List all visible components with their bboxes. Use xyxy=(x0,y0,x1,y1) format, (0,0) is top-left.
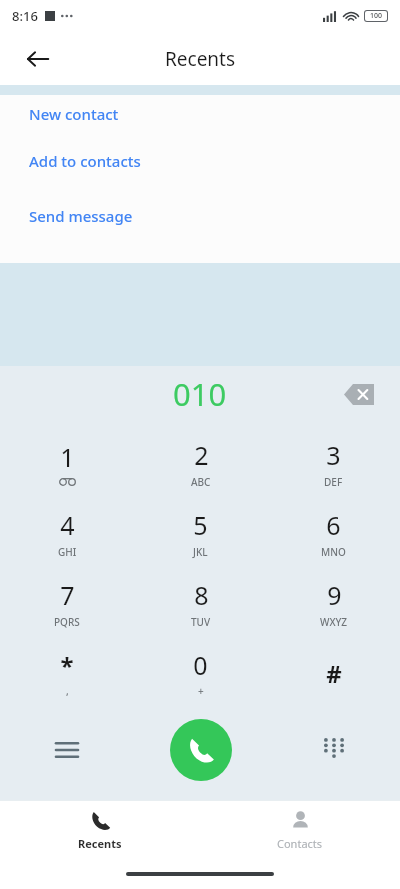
button[interactable]: 8 xyxy=(134,568,267,638)
staticText: Recents xyxy=(165,46,236,72)
staticText: 1 xyxy=(60,440,75,474)
staticText: * xyxy=(60,649,74,682)
staticText: New contact xyxy=(29,104,119,124)
button[interactable]: 2 xyxy=(134,428,267,498)
button[interactable]: 9 xyxy=(267,568,400,638)
button[interactable]: 1 xyxy=(0,428,134,498)
staticText: 9 xyxy=(327,578,342,612)
staticText: Add to contacts xyxy=(29,151,141,171)
staticText: PQRS xyxy=(54,615,80,629)
staticText: Send message xyxy=(29,206,133,226)
button[interactable]: More options xyxy=(0,710,134,790)
staticText: 010 xyxy=(173,373,227,415)
staticText: 7 xyxy=(60,578,75,612)
staticText: ABC xyxy=(191,475,211,489)
button[interactable]: 5 xyxy=(134,498,267,568)
staticText: TUV xyxy=(191,615,211,629)
staticText: 5 xyxy=(193,508,208,542)
staticText: + xyxy=(198,684,204,698)
button[interactable]: Send message xyxy=(0,188,400,243)
staticText: 8 xyxy=(194,578,209,612)
button[interactable]: Back xyxy=(14,35,62,83)
staticText: JKL xyxy=(193,545,208,559)
staticText: 6 xyxy=(326,508,341,542)
staticText: # xyxy=(326,657,342,690)
button[interactable]: 7 xyxy=(0,568,134,638)
staticText: 3 xyxy=(326,438,341,472)
staticText: Contacts xyxy=(277,836,323,851)
staticText: 2 xyxy=(194,438,209,472)
staticText: MNO xyxy=(321,545,346,559)
button[interactable]: 6 xyxy=(267,498,400,568)
staticText: 8:16 xyxy=(12,7,38,25)
button[interactable]: 3 xyxy=(267,428,400,498)
button[interactable]: 0 xyxy=(134,638,267,708)
button[interactable]: New contact xyxy=(0,95,400,133)
staticText: , xyxy=(66,684,69,698)
staticText: 4 xyxy=(60,508,75,542)
button[interactable]: 4 xyxy=(0,498,134,568)
staticText: 100 xyxy=(370,11,383,21)
button[interactable]: Call xyxy=(170,719,232,781)
button[interactable]: Dialpad xyxy=(267,710,400,790)
staticText: 0 xyxy=(193,648,208,682)
button[interactable]: Recents xyxy=(0,801,200,859)
button[interactable]: Contacts xyxy=(200,801,400,859)
button[interactable]: Add to contacts xyxy=(0,133,400,188)
staticText: Recents xyxy=(78,836,122,851)
button[interactable]: # xyxy=(267,638,400,708)
staticText: GHI xyxy=(58,545,77,559)
button[interactable]: Backspace xyxy=(337,372,381,416)
button[interactable]: * xyxy=(0,638,134,708)
staticText: DEF xyxy=(324,475,343,489)
staticText: WXYZ xyxy=(320,615,348,629)
